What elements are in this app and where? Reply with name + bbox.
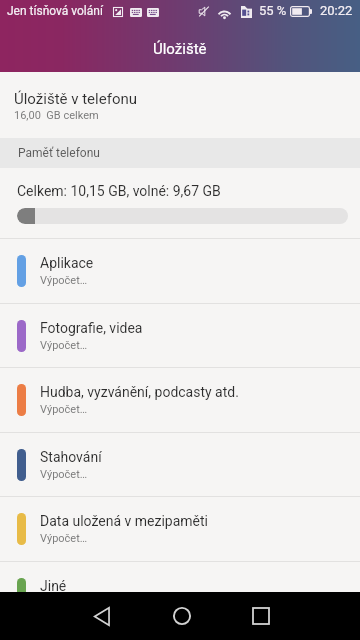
- staticText: Jiné: [40, 578, 67, 594]
- button[interactable]: Fotografie, videa: [0, 304, 360, 368]
- button[interactable]: Recent apps: [237, 592, 285, 640]
- staticText: Jen tísňová volání: [7, 4, 103, 18]
- button[interactable]: Hudba, vyzvánění, podcasty atd.: [0, 368, 360, 432]
- staticText: Úložiště v telefonu: [14, 90, 137, 108]
- staticText: 55 %: [259, 3, 287, 18]
- staticText: Celkem: 10,15 GB, volné: 9,67 GB: [17, 183, 221, 199]
- staticText: Výpočet…: [40, 339, 88, 352]
- staticText: Výpočet…: [40, 274, 88, 287]
- button[interactable]: Úložiště v telefonu: [0, 72, 360, 138]
- staticText: Hudba, vyzvánění, podcasty atd.: [40, 384, 239, 400]
- staticText: Výpočet…: [40, 403, 88, 416]
- button[interactable]: Stahování: [0, 433, 360, 497]
- button[interactable]: Back: [78, 592, 126, 640]
- staticText: 20:22: [320, 3, 353, 18]
- staticText: Aplikace: [40, 255, 94, 271]
- button[interactable]: Jiné: [0, 562, 360, 626]
- button[interactable]: Data uložená v mezipaměti: [0, 497, 360, 561]
- staticText: Výpočet…: [40, 532, 88, 545]
- staticText: Paměť telefonu: [18, 146, 100, 160]
- staticText: Úložiště: [153, 40, 207, 58]
- staticText: Fotografie, videa: [40, 320, 143, 336]
- staticText: 16,00 GB celkem: [14, 109, 99, 122]
- staticText: Výpočet…: [40, 468, 88, 481]
- staticText: Data uložená v mezipaměti: [40, 513, 209, 529]
- button[interactable]: Aplikace: [0, 239, 360, 303]
- staticText: Stahování: [40, 449, 102, 465]
- button[interactable]: Home: [158, 592, 206, 640]
